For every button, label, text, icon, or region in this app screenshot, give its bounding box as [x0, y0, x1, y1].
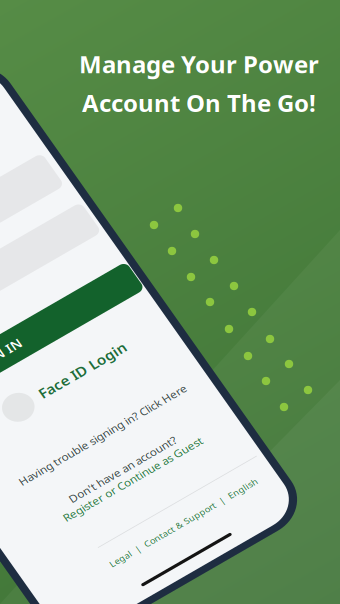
button[interactable]: SIGN IN [0, 508, 62, 550]
button[interactable]: Face ID Login [0, 580, 64, 604]
staticText: Account On The Go! [82, 87, 316, 119]
staticText: Manage Your Power [79, 48, 319, 80]
